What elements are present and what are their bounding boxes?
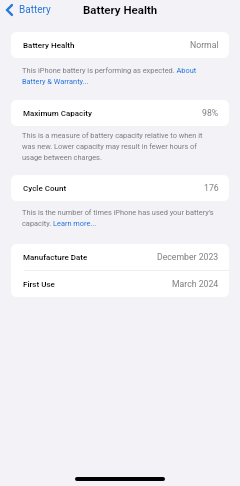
staticText: Normal <box>190 40 219 50</box>
staticText: First Use <box>23 280 55 289</box>
staticText: This iPhone battery is performing as exp… <box>22 66 218 86</box>
staticText: Cycle Count <box>23 184 67 193</box>
staticText: Maximum Capacity <box>23 109 93 118</box>
button[interactable]: First Use <box>11 271 229 297</box>
staticText: March 2024 <box>172 279 219 289</box>
staticText: Battery Health <box>83 3 158 16</box>
staticText: This is a measure of battery capacity re… <box>22 131 218 162</box>
staticText: 98% <box>202 108 219 118</box>
staticText: December 2023 <box>157 252 219 262</box>
staticText: This is the number of times iPhone has u… <box>22 208 218 228</box>
button[interactable]: Battery Health <box>11 32 229 58</box>
staticText: Manufacture Date <box>23 253 88 262</box>
button[interactable]: Back to Battery <box>0 2 57 18</box>
button[interactable]: Maximum Capacity <box>11 100 229 126</box>
button[interactable]: Manufacture Date <box>11 244 229 270</box>
staticText: 176 <box>204 183 219 193</box>
staticText: Battery <box>19 4 51 16</box>
staticText: Battery Health <box>23 41 75 50</box>
button[interactable]: Cycle Count <box>11 175 229 201</box>
